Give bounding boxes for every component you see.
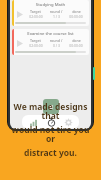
staticText: 00:00:00 [69,43,83,48]
button[interactable]: Examine the course list [12,29,89,55]
button[interactable]: Start Studying Math [15,9,25,19]
staticText: done [72,38,81,43]
staticText: 1 / 3 [53,14,60,19]
button[interactable]: Start Examine the course list [15,38,25,48]
button[interactable]: Timer [45,116,57,128]
staticText: Target [30,38,41,43]
button[interactable]: Settings [62,116,74,128]
staticText: Target [30,9,41,14]
staticText: 02:00:00 [29,14,43,19]
button[interactable]: Studying Math [12,0,89,26]
button[interactable]: Add task [43,99,59,114]
staticText: distract you. [24,147,77,159]
staticText: Studying Math [15,2,86,8]
staticText: done [72,9,81,14]
staticText: Examine the course list [15,31,86,37]
staticText: 0 / 3 [53,43,60,48]
staticText: round / pom [46,38,66,43]
staticText: would not tire you or [6,124,95,145]
button[interactable]: Statistics [27,116,39,128]
staticText: 02:00:00 [29,43,43,48]
staticText: We made designs that [6,101,95,122]
staticText: 00:00:00 [69,14,83,19]
staticText: round / pom [46,9,66,14]
